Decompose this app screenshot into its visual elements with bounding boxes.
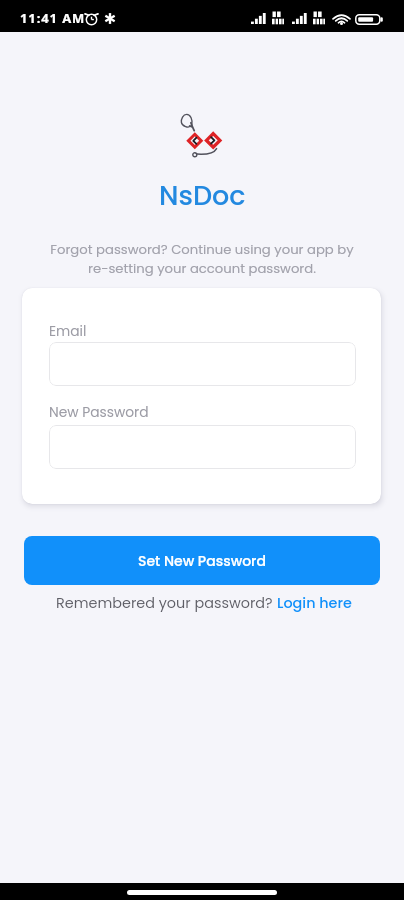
button[interactable]: [49, 425, 356, 469]
button[interactable]: Login here: [277, 593, 352, 613]
staticText: NsDoc: [159, 177, 246, 215]
button[interactable]: Set New Password: [24, 536, 380, 585]
staticText: New Password: [49, 403, 149, 422]
button[interactable]: [49, 342, 356, 386]
staticText: Email: [49, 322, 87, 341]
staticText: Forgot password? Continue using your app…: [40, 240, 364, 278]
staticText: Remembered your password?: [56, 593, 277, 613]
staticText: Login here: [277, 593, 352, 613]
staticText: 11:41 AM: [20, 9, 86, 27]
staticText: Set New Password: [138, 551, 266, 571]
